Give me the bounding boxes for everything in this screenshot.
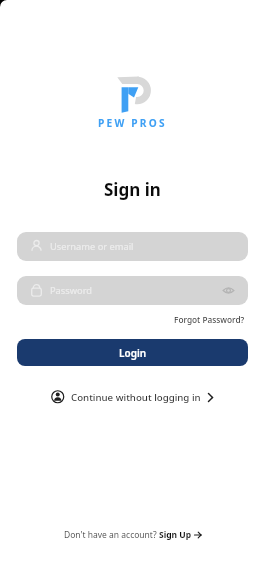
staticText: Sign Up — [159, 529, 192, 541]
button[interactable]: Forgot Password? — [174, 314, 245, 325]
button[interactable]: Continue without logging in — [0, 388, 265, 406]
staticText: Password — [50, 284, 93, 297]
staticText: Username or email — [50, 240, 134, 253]
staticText: Don't have an account? — [64, 529, 159, 541]
button[interactable]: Password — [17, 276, 248, 305]
staticText: Continue without logging in — [71, 391, 201, 404]
button[interactable]: Don't have an account? — [0, 527, 265, 543]
staticText: PEW PROS — [98, 116, 167, 130]
staticText: Sign in — [104, 178, 161, 201]
staticText: Login — [119, 346, 147, 360]
button[interactable]: Username or email — [17, 232, 248, 261]
button[interactable]: Login — [17, 339, 248, 366]
